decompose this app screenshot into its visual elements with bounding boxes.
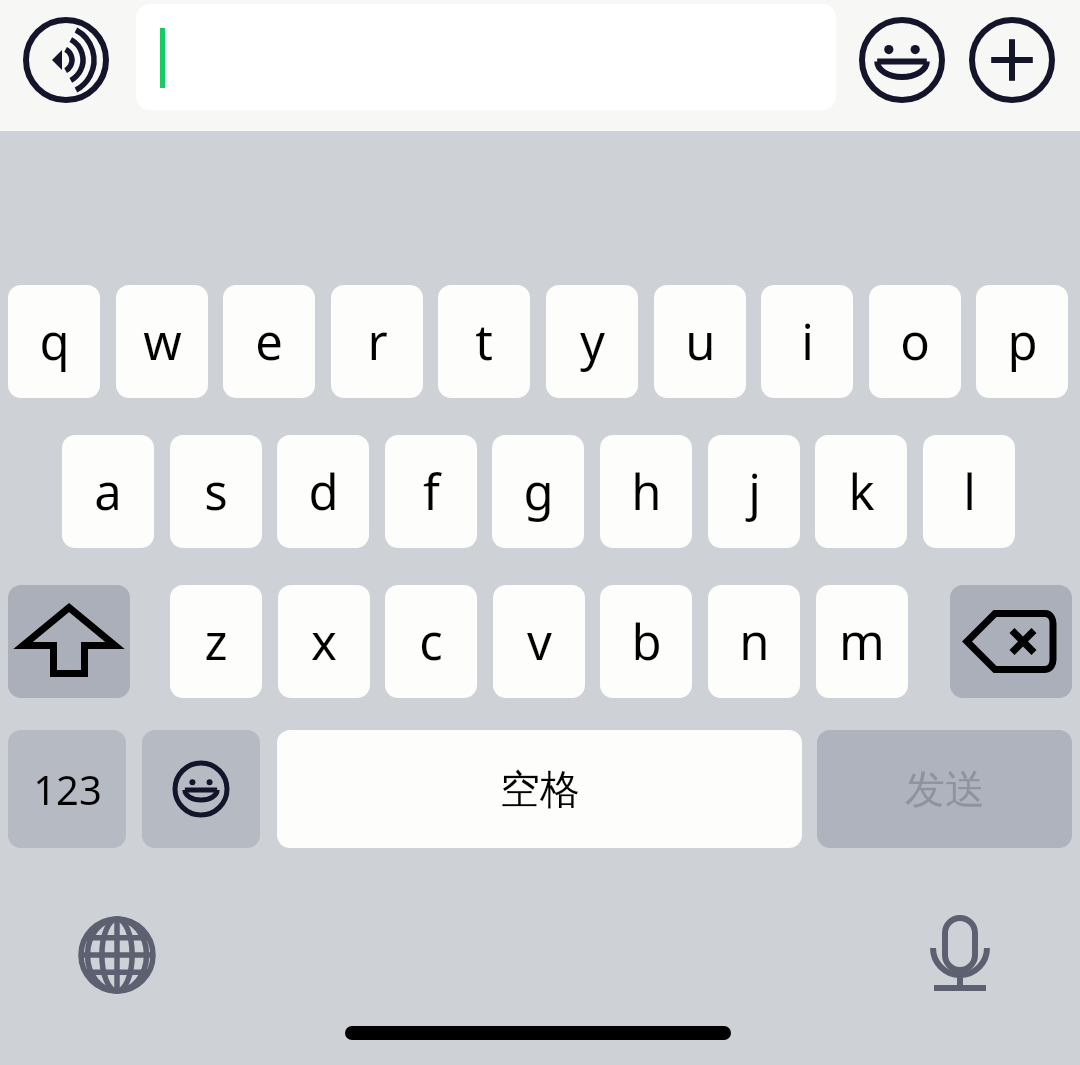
button[interactable]: l bbox=[923, 435, 1015, 548]
button[interactable]: Voice input bbox=[22, 16, 110, 104]
button[interactable]: n bbox=[708, 585, 800, 698]
button[interactable]: Shift bbox=[8, 585, 130, 698]
button[interactable]: Backspace bbox=[950, 585, 1072, 698]
staticText: k bbox=[848, 458, 875, 525]
button[interactable]: v bbox=[493, 585, 585, 698]
staticText: 空格 bbox=[500, 764, 580, 814]
staticText: z bbox=[204, 608, 228, 675]
button[interactable]: w bbox=[116, 285, 208, 398]
button[interactable]: g bbox=[492, 435, 584, 548]
staticText: 123 bbox=[33, 762, 102, 816]
button[interactable]: k bbox=[815, 435, 907, 548]
button[interactable]: t bbox=[438, 285, 530, 398]
staticText: c bbox=[419, 608, 443, 675]
button[interactable]: s bbox=[170, 435, 262, 548]
staticText: h bbox=[631, 458, 662, 525]
button[interactable]: o bbox=[869, 285, 961, 398]
staticText: q bbox=[39, 308, 70, 375]
button[interactable]: f bbox=[385, 435, 477, 548]
staticText: w bbox=[143, 308, 182, 375]
button[interactable]: Emoji bbox=[858, 16, 946, 104]
button[interactable]: e bbox=[223, 285, 315, 398]
staticText: x bbox=[311, 608, 337, 675]
button[interactable]: y bbox=[546, 285, 638, 398]
staticText: i bbox=[801, 308, 814, 375]
staticText: p bbox=[1007, 308, 1038, 375]
button[interactable]: x bbox=[278, 585, 370, 698]
staticText: b bbox=[631, 608, 662, 675]
staticText: n bbox=[739, 608, 770, 675]
button[interactable]: r bbox=[331, 285, 423, 398]
staticText: e bbox=[255, 308, 283, 375]
button[interactable]: d bbox=[277, 435, 369, 548]
staticText: a bbox=[94, 458, 122, 525]
button[interactable]: Switch language bbox=[78, 916, 156, 994]
staticText: o bbox=[900, 308, 930, 375]
button[interactable]: q bbox=[8, 285, 100, 398]
staticText: r bbox=[367, 308, 388, 375]
staticText: s bbox=[204, 458, 228, 525]
button[interactable]: i bbox=[761, 285, 853, 398]
button[interactable]: b bbox=[600, 585, 692, 698]
button[interactable]: 发送 bbox=[817, 730, 1072, 848]
button[interactable]: a bbox=[62, 435, 154, 548]
staticText: t bbox=[475, 308, 493, 375]
staticText: u bbox=[685, 308, 716, 375]
staticText: l bbox=[963, 458, 976, 525]
staticText: j bbox=[748, 458, 761, 525]
button[interactable]: h bbox=[600, 435, 692, 548]
staticText: f bbox=[423, 458, 440, 525]
staticText: y bbox=[580, 308, 605, 375]
button[interactable]: u bbox=[654, 285, 746, 398]
button[interactable]: p bbox=[976, 285, 1068, 398]
staticText: d bbox=[308, 458, 339, 525]
button[interactable]: 123 bbox=[8, 730, 126, 848]
staticText: m bbox=[839, 608, 885, 675]
button[interactable]: More bbox=[968, 16, 1056, 104]
button[interactable]: j bbox=[708, 435, 800, 548]
button[interactable]: z bbox=[170, 585, 262, 698]
button[interactable]: Emoji keyboard bbox=[142, 730, 260, 848]
staticText: v bbox=[527, 608, 552, 675]
button[interactable] bbox=[136, 4, 836, 110]
staticText: g bbox=[523, 458, 554, 525]
staticText: 发送 bbox=[905, 764, 985, 814]
button[interactable]: m bbox=[816, 585, 908, 698]
button[interactable]: Voice dictation bbox=[922, 912, 998, 998]
button[interactable]: c bbox=[385, 585, 477, 698]
button[interactable]: 空格 bbox=[277, 730, 802, 848]
